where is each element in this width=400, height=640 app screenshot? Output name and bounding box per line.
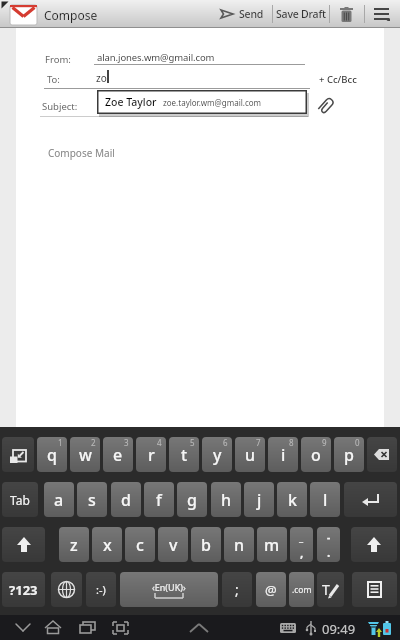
staticText: x [103,534,112,556]
staticText: zo [96,71,107,85]
button[interactable]: Tab [2,482,38,517]
staticText: i [281,444,286,466]
staticText: . [327,544,331,560]
button[interactable]: :-) [86,572,116,607]
staticText: 2 [91,437,96,448]
button[interactable]: c [125,527,155,562]
button[interactable] [329,0,364,28]
staticText: To: [47,73,60,86]
staticText: T [322,580,330,599]
staticText: zoe.taylor.wm@gmail.com [163,97,262,108]
staticText: 5 [190,437,195,448]
button[interactable]: g [177,482,207,517]
button[interactable] [367,437,397,472]
button[interactable]: m [257,527,287,562]
staticText: h [221,489,232,511]
staticText: e [113,444,123,466]
staticText: 09:49 [322,620,356,638]
staticText: _ [299,530,304,544]
staticText: Compose Mail [48,146,115,160]
button[interactable]: x [92,527,122,562]
button[interactable]: ?123 [2,572,45,607]
button[interactable]: ‹En(UK)› [120,572,218,607]
button[interactable]: t [169,437,199,472]
button[interactable]: T [317,572,344,607]
button[interactable] [8,615,38,640]
staticText: w [79,444,92,466]
staticText: y [213,444,222,466]
button[interactable]: h [211,482,241,517]
staticText: Save Draft [276,7,326,21]
staticText: m [264,534,280,556]
button[interactable]: q [37,437,67,472]
button[interactable] [316,95,338,117]
staticText: o [311,444,321,466]
staticText: Tab [10,492,30,508]
staticText: Compose [44,7,98,23]
button[interactable] [10,3,37,25]
staticText: c [136,534,144,556]
staticText: k [288,489,297,511]
staticText: p [344,444,354,466]
button[interactable] [2,527,45,562]
staticText: 1 [58,437,63,448]
button[interactable]: b [191,527,221,562]
staticText: .com [292,584,312,596]
button[interactable]: w [70,437,100,472]
staticText: ?123 [9,581,38,599]
button[interactable] [72,615,102,640]
staticText: 7 [256,437,261,448]
button[interactable] [344,482,397,517]
button[interactable]: Send [220,0,272,28]
button[interactable]: j [244,482,274,517]
button[interactable]: _ [290,527,313,562]
button[interactable]: Zoe Taylor [97,90,307,114]
button[interactable] [352,572,397,607]
button[interactable]: z [59,527,89,562]
staticText: 3 [124,437,129,448]
button[interactable]: a [44,482,74,517]
staticText: , [300,544,304,560]
button[interactable]: @ [256,572,286,607]
staticText: @ [265,581,277,599]
button[interactable]: .com [289,572,314,607]
staticText: t [181,444,188,466]
button[interactable]: u [235,437,265,472]
button[interactable] [185,615,213,640]
button[interactable]: l [310,482,340,517]
button[interactable] [38,615,68,640]
button[interactable]: + Cc/Bcc [319,73,357,86]
button[interactable]: v [158,527,188,562]
staticText: Zoe Taylor [105,95,157,109]
staticText: a [54,489,64,511]
staticText: Send [239,7,264,21]
button[interactable]: o [301,437,331,472]
button[interactable]: ; [222,572,252,607]
button[interactable]: i [268,437,298,472]
button[interactable] [351,527,397,562]
button[interactable]: n [224,527,254,562]
button[interactable]: e [103,437,133,472]
staticText: 6 [223,437,228,448]
button[interactable]: s [77,482,107,517]
button[interactable]: f [144,482,174,517]
button[interactable] [2,437,34,472]
button[interactable]: - [317,527,340,562]
button[interactable]: r [136,437,166,472]
button[interactable]: y [202,437,232,472]
button[interactable] [105,615,135,640]
staticText: 0 [355,437,360,448]
staticText: l [323,489,328,511]
staticText: v [169,534,178,556]
button[interactable]: k [277,482,307,517]
button[interactable]: Save Draft [272,0,329,28]
button[interactable] [51,572,82,607]
staticText: 8 [289,437,294,448]
staticText: r [148,444,155,466]
button[interactable] [364,0,400,28]
button[interactable]: p [334,437,364,472]
staticText: j [257,489,262,511]
button[interactable]: alan.jones.wm@gmail.com [97,51,215,64]
staticText: d [121,489,131,511]
button[interactable]: d [111,482,141,517]
